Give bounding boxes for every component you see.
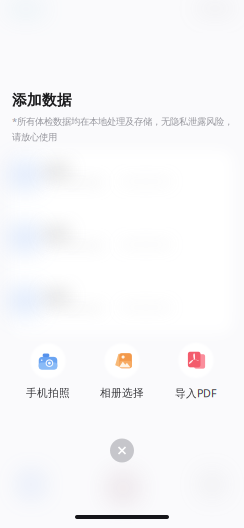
button[interactable]: 导入PDF	[159, 342, 233, 400]
staticText: 导入PDF	[175, 386, 217, 400]
button[interactable]: 相册选择	[85, 342, 159, 400]
button[interactable]: 关闭	[102, 430, 142, 470]
staticText: *所有体检数据均在本地处理及存储，无隐私泄露风险，请放心使用	[12, 115, 233, 143]
staticText: 相册选择	[100, 386, 144, 399]
staticText: 添加数据	[12, 91, 72, 109]
button[interactable]: 手机拍照	[11, 342, 85, 400]
staticText: 手机拍照	[26, 386, 70, 399]
